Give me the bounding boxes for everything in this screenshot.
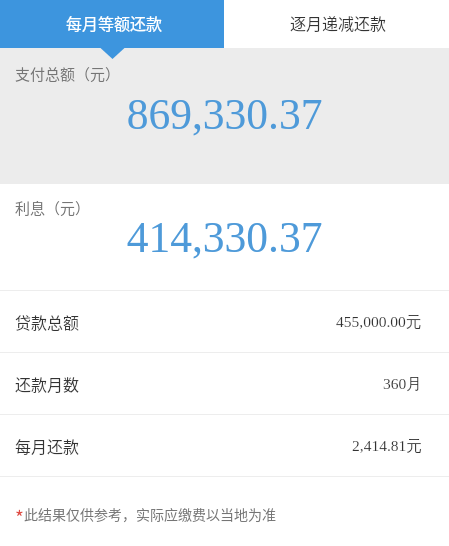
staticText: 869,330.37 — [0, 90, 449, 138]
staticText: 此结果仅供参考，实际应缴费以当地为准 — [24, 504, 276, 524]
staticText: 利息（元） — [15, 197, 91, 219]
staticText: 414,330.37 — [0, 213, 449, 261]
staticText: 还款月数 — [15, 372, 80, 395]
staticText: 支付总额（元） — [15, 63, 121, 85]
button[interactable]: 贷款总额 — [0, 291, 449, 352]
staticText: 455,000.00元 — [336, 312, 422, 332]
staticText: 逐月递减还款 — [290, 11, 387, 34]
button[interactable]: 还款月数 — [0, 353, 449, 414]
button[interactable]: 每月等额还款 — [0, 0, 224, 48]
staticText: 贷款总额 — [15, 310, 80, 333]
button[interactable]: 每月还款 — [0, 415, 449, 476]
staticText: 360月 — [383, 374, 422, 394]
staticText: 2,414.81元 — [352, 436, 422, 456]
staticText: 每月还款 — [15, 434, 80, 457]
staticText: 每月等额还款 — [66, 11, 163, 34]
staticText: * — [15, 503, 24, 531]
button[interactable]: 逐月递减还款 — [224, 0, 449, 48]
